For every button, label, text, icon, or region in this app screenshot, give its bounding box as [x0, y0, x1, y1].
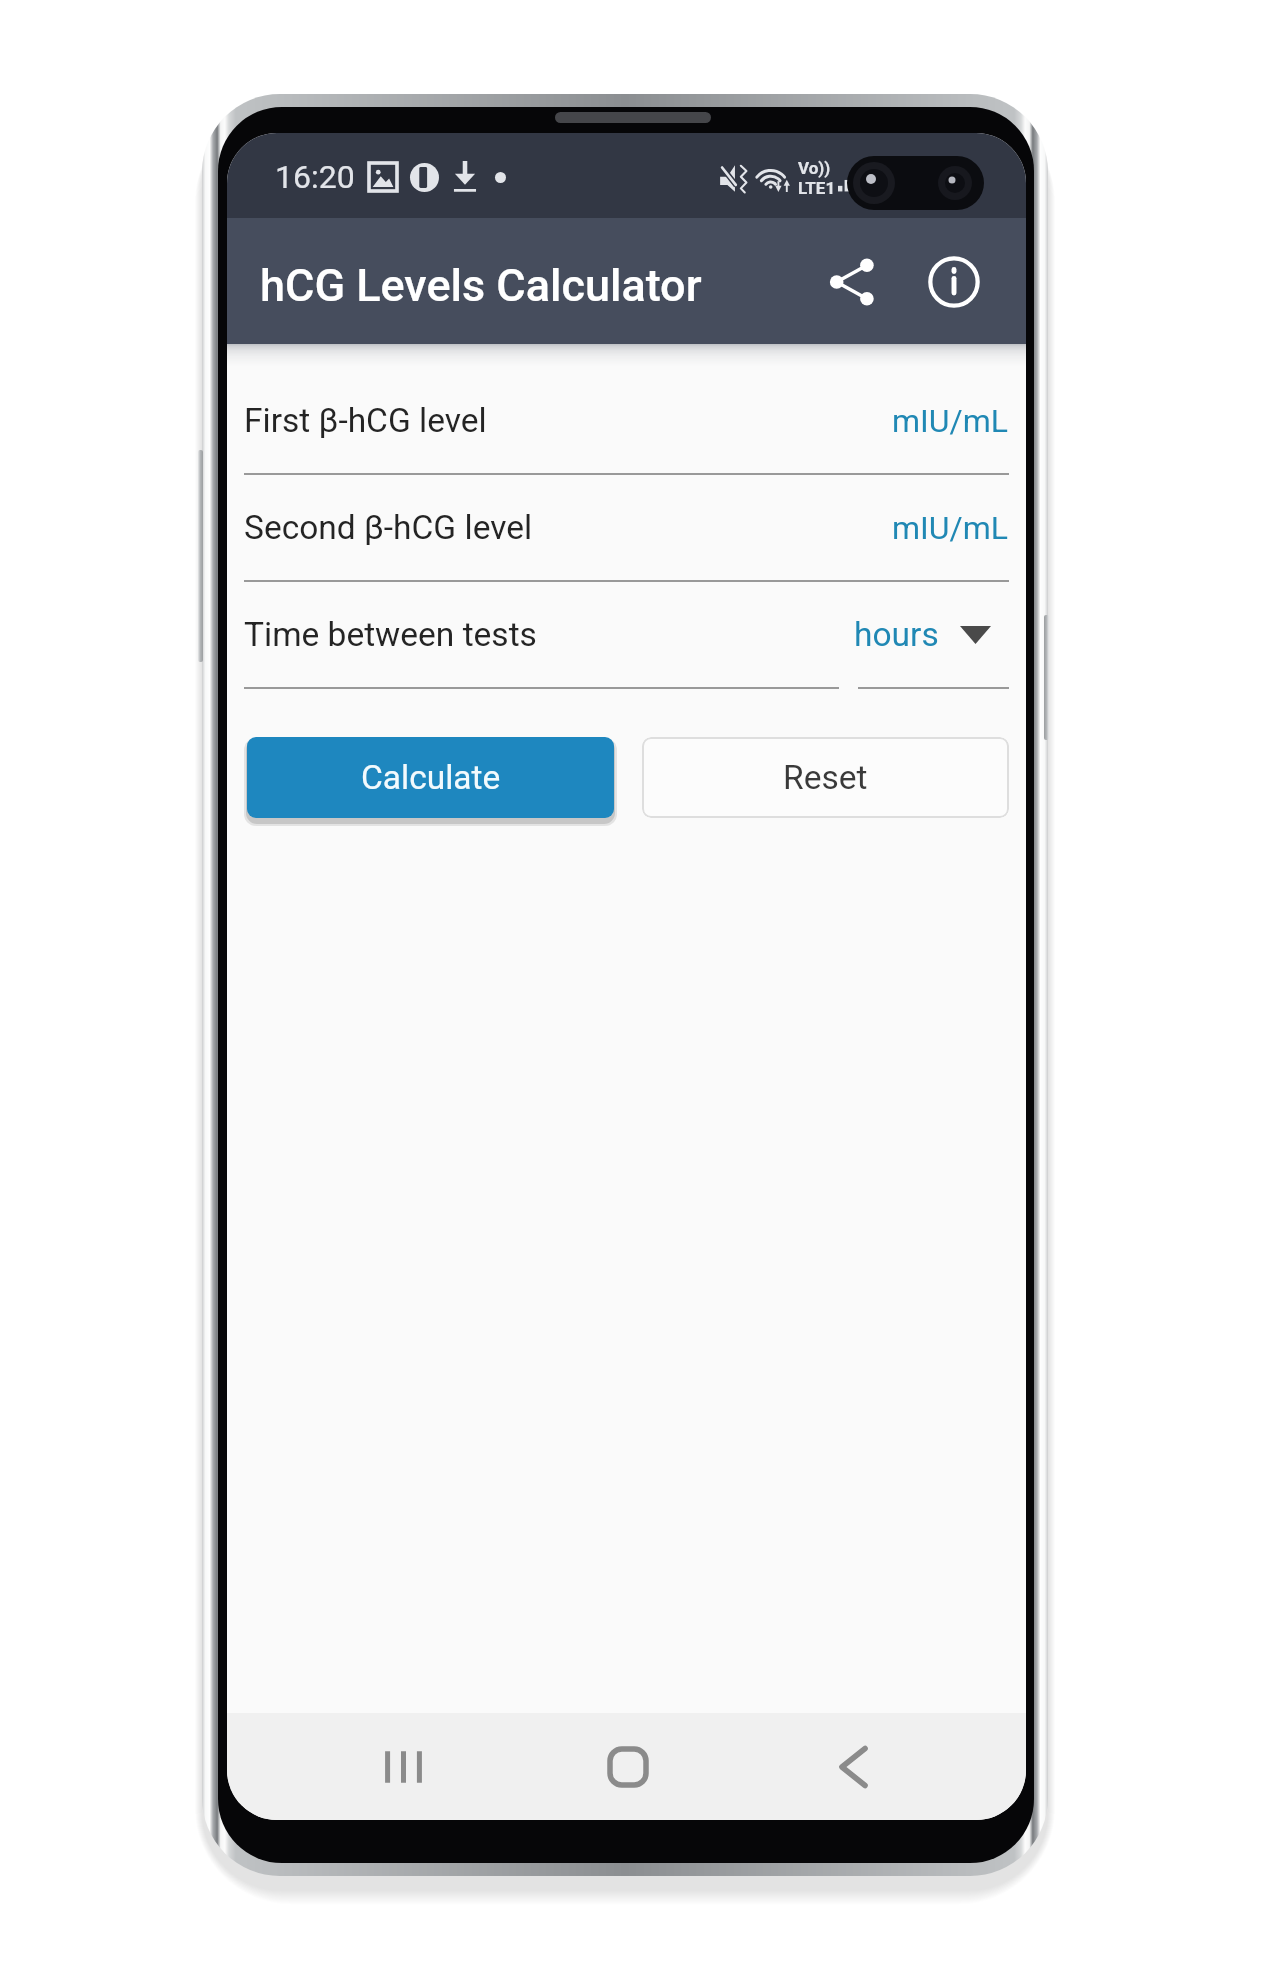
button[interactable]: Recent apps [357, 1713, 449, 1820]
button[interactable]: Calculate [247, 737, 614, 818]
button[interactable]: About [905, 233, 1002, 330]
button[interactable]: First β-hCG level [244, 368, 1009, 473]
button[interactable]: hours [854, 615, 1009, 654]
staticText: hours [854, 615, 939, 654]
button[interactable]: Home [582, 1713, 674, 1820]
button[interactable]: Second β-hCG level [244, 475, 1009, 580]
staticText: LTE1 [798, 178, 836, 198]
staticText: 16:20 [275, 158, 355, 196]
staticText: Vo)) [798, 158, 831, 178]
staticText: Reset [783, 758, 868, 797]
button[interactable]: Share [804, 233, 901, 330]
staticText: mIU/mL [892, 402, 1009, 440]
staticText: hCG Levels Calculator [260, 259, 702, 312]
button[interactable]: Back [807, 1713, 899, 1820]
staticText: mIU/mL [892, 509, 1009, 547]
staticText: First β-hCG level [244, 401, 487, 440]
staticText: Second β-hCG level [244, 508, 533, 547]
staticText: Calculate [361, 758, 501, 797]
button[interactable]: Reset [642, 737, 1009, 818]
staticText: Time between tests [244, 615, 537, 654]
